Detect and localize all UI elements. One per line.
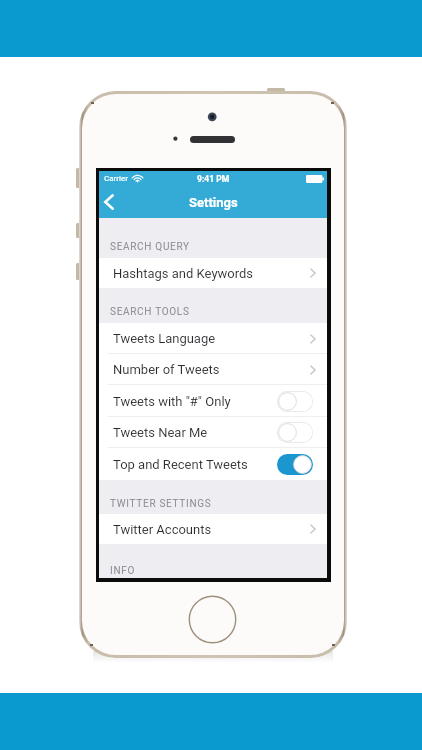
button[interactable]: Top and Recent Tweets	[99, 448, 327, 480]
staticText: Number of Tweets	[113, 362, 220, 377]
button[interactable]: Tweets with "#" Only	[99, 385, 327, 417]
staticText: 9:41 PM	[197, 174, 230, 184]
staticText: Hashtags and Keywords	[113, 266, 254, 281]
staticText: TWITTER SETTINGS	[110, 498, 212, 510]
staticText: SEARCH QUERY	[110, 241, 190, 253]
staticText: INFO	[110, 565, 136, 577]
staticText: Settings	[189, 195, 238, 210]
staticText: SEARCH TOOLS	[110, 306, 190, 318]
staticText: Tweets Language	[113, 331, 216, 346]
button[interactable]: Tweets Near Me	[99, 417, 327, 448]
staticText: Top and Recent Tweets	[113, 457, 248, 472]
button[interactable]: Number of Tweets	[99, 354, 327, 385]
button[interactable]: Twitter Accounts	[99, 514, 327, 544]
button[interactable]: Back	[99, 190, 123, 218]
staticText: Tweets Near Me	[113, 425, 208, 440]
staticText: Carrier	[104, 174, 128, 183]
staticText: Twitter Accounts	[113, 522, 212, 537]
staticText: Tweets with "#" Only	[113, 394, 231, 409]
button[interactable]: Tweets Language	[99, 323, 327, 354]
button[interactable]: Hashtags and Keywords	[99, 258, 327, 288]
